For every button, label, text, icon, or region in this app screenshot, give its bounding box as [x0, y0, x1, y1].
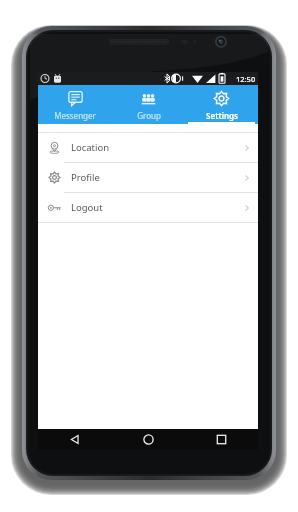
staticText: Profile	[71, 171, 236, 184]
button[interactable]: Logout	[38, 193, 258, 222]
button[interactable]: Recent apps	[185, 429, 258, 450]
button[interactable]: Group	[112, 85, 185, 124]
other: Logout	[48, 201, 61, 214]
button[interactable]: Messenger	[38, 85, 112, 124]
other: Settings	[213, 90, 230, 107]
button[interactable]: Settings	[38, 163, 258, 192]
staticText: Logout	[71, 201, 236, 214]
button[interactable]: Location	[38, 133, 258, 162]
staticText: Messenger	[54, 110, 96, 121]
button[interactable]: Home	[112, 429, 185, 450]
other: Location	[48, 141, 61, 154]
staticText: Location	[71, 141, 236, 154]
staticText: Group	[137, 110, 161, 121]
button[interactable]: Back	[38, 429, 112, 450]
button[interactable]: Settings	[185, 85, 258, 124]
staticText: Settings	[206, 110, 238, 121]
staticText: 12:50	[236, 74, 256, 84]
other: Settings	[48, 171, 61, 184]
